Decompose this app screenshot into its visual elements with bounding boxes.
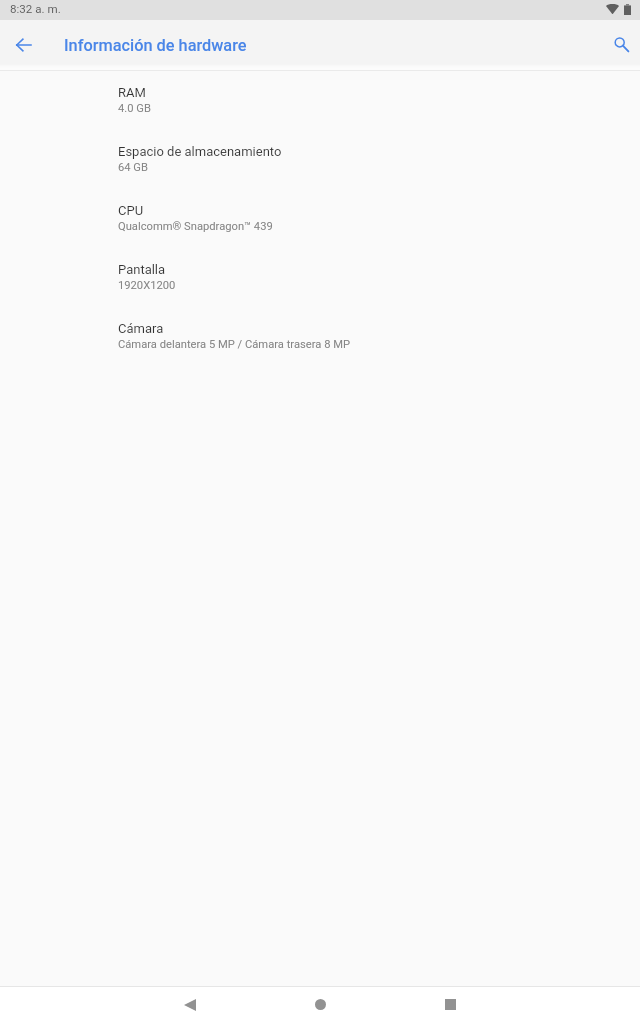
staticText: Cámara xyxy=(118,321,164,336)
staticText: 8:32 a. m. xyxy=(10,2,61,16)
staticText: 1920X1200 xyxy=(118,279,176,292)
staticText: Espacio de almacenamiento xyxy=(118,144,282,159)
button[interactable]: RAM xyxy=(0,76,640,135)
staticText: Información de hardware xyxy=(64,36,247,55)
button[interactable]: Back xyxy=(4,26,42,64)
staticText: Pantalla xyxy=(118,262,166,277)
button[interactable]: Cámara xyxy=(0,312,640,371)
button[interactable]: Back xyxy=(166,987,214,1024)
button[interactable]: CPU xyxy=(0,194,640,253)
staticText: RAM xyxy=(118,85,146,100)
button[interactable]: Espacio de almacenamiento xyxy=(0,135,640,194)
staticText: CPU xyxy=(118,203,144,218)
staticText: Qualcomm® Snapdragon™ 439 xyxy=(118,220,273,233)
staticText: Cámara delantera 5 MP / Cámara trasera 8… xyxy=(118,338,351,351)
button[interactable]: Home xyxy=(296,987,344,1024)
button[interactable]: Search xyxy=(602,25,640,63)
staticText: 64 GB xyxy=(118,161,148,174)
button[interactable]: Pantalla xyxy=(0,253,640,312)
button[interactable]: Recents xyxy=(426,987,474,1024)
staticText: 4.0 GB xyxy=(118,102,151,115)
